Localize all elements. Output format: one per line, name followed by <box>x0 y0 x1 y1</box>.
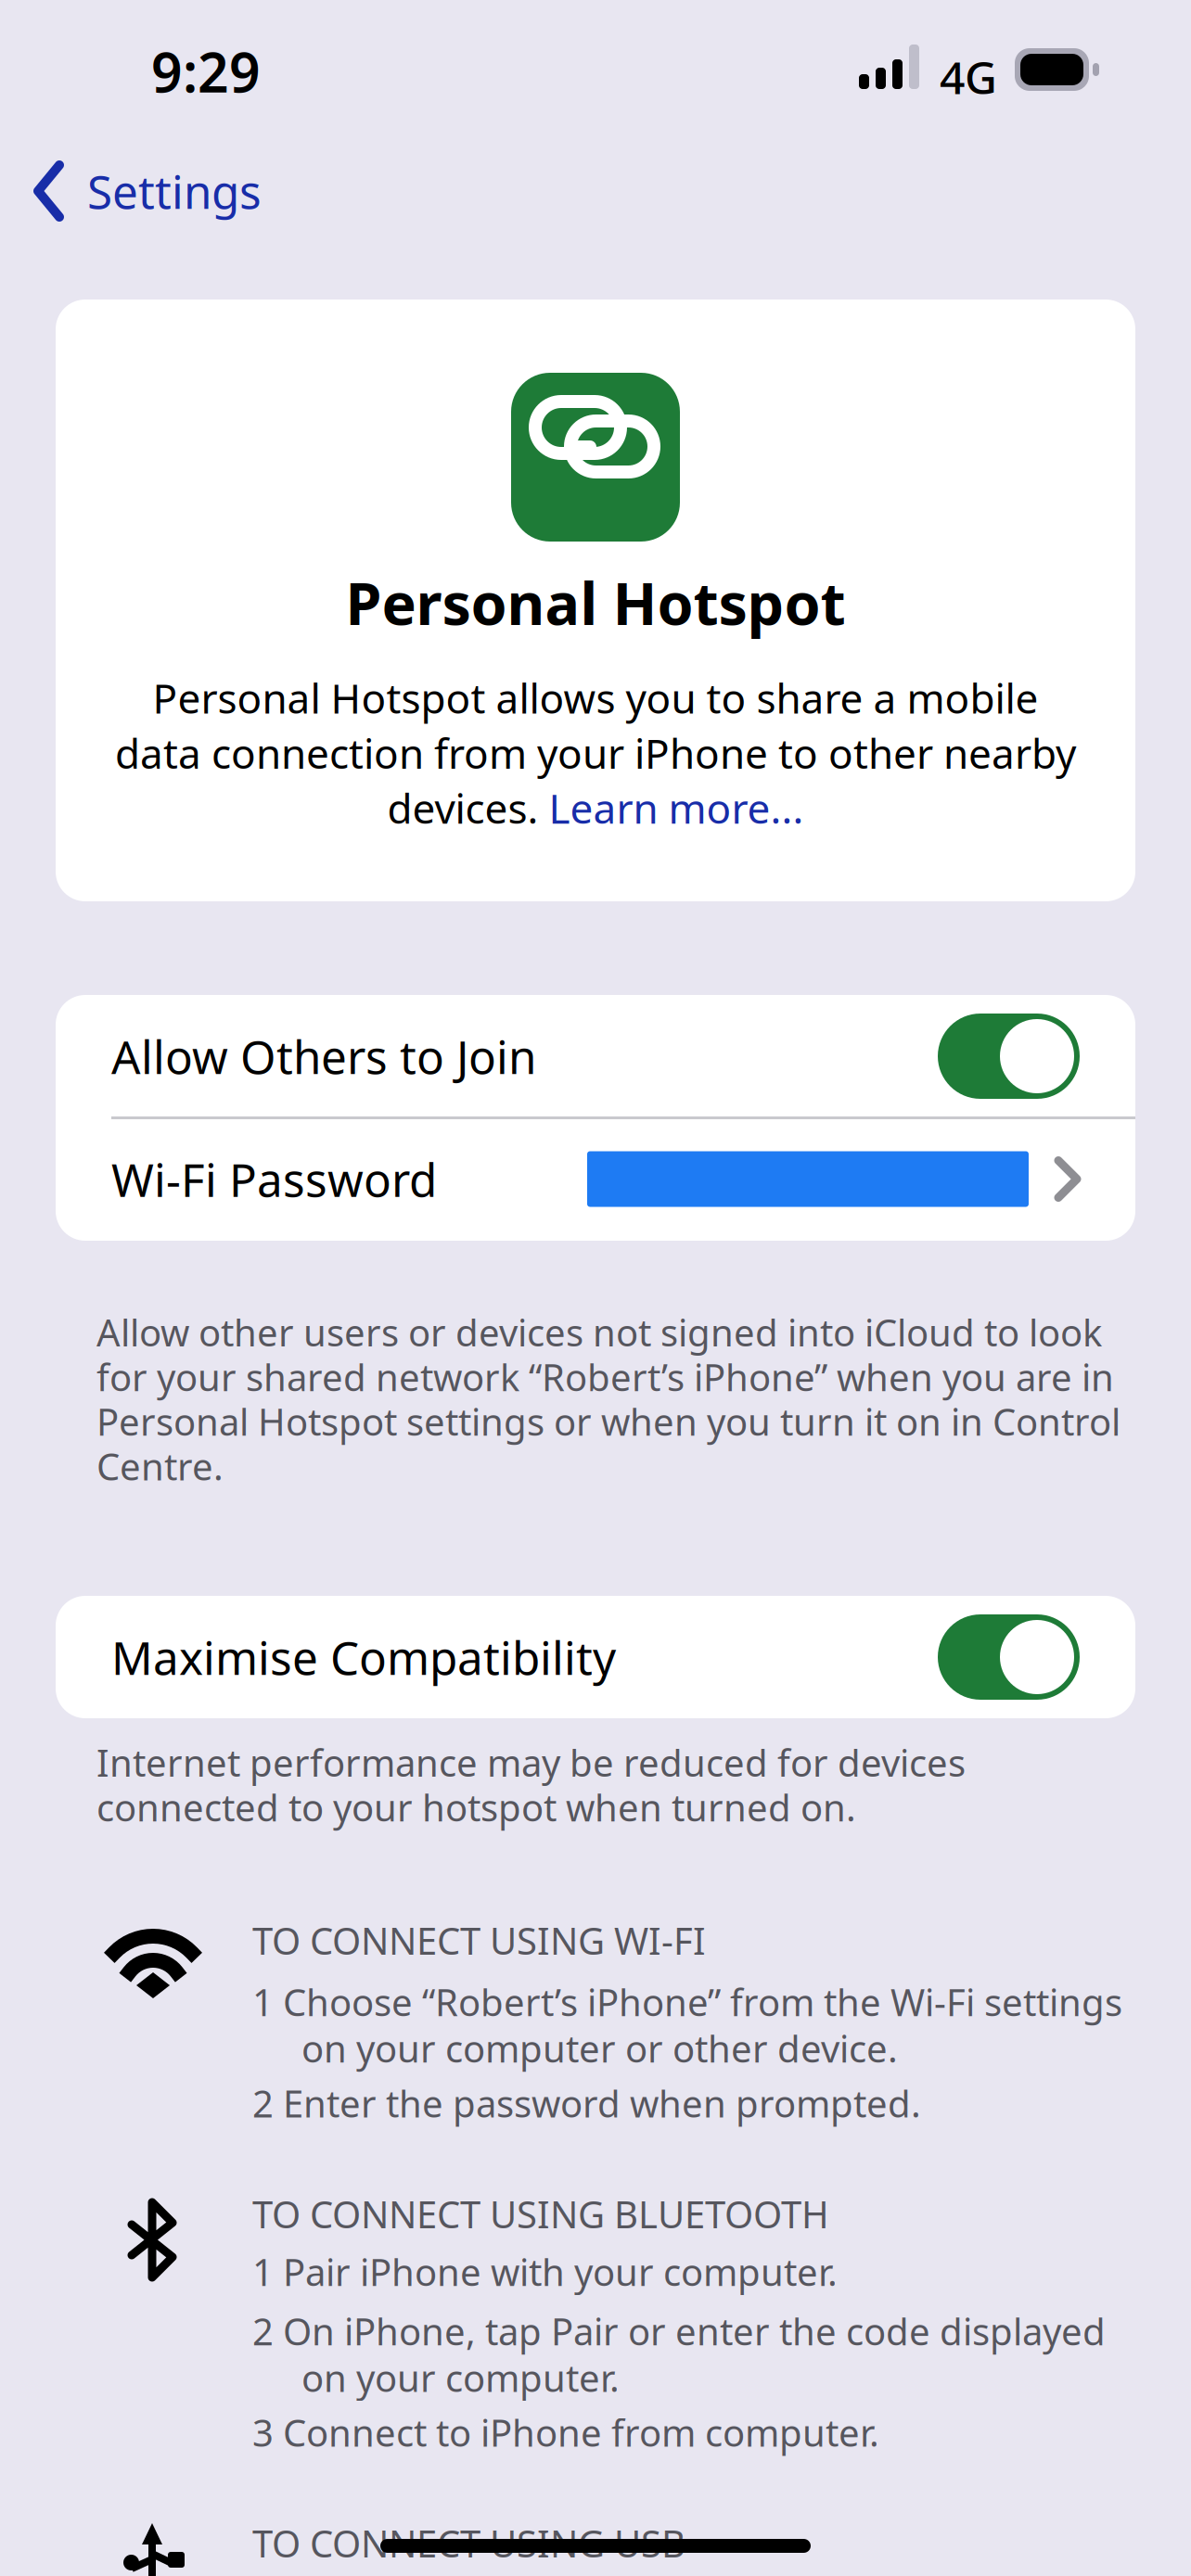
staticText: TO CONNECT USING WI-FI <box>252 1916 706 1965</box>
staticText: 1 <box>252 2247 274 2296</box>
staticText: data connection from your iPhone to othe… <box>115 726 1076 780</box>
staticText: Learn more... <box>549 781 804 835</box>
staticText: Allow Others to Join <box>111 1026 536 1087</box>
staticText: Allow other users or devices not signed … <box>96 1307 1121 1491</box>
staticText: Wi-Fi Password <box>111 1149 437 1209</box>
staticText: Choose “Robert’s iPhone” from the Wi-Fi … <box>283 1977 1122 2073</box>
staticText: Settings <box>87 161 262 221</box>
staticText: Personal Hotspot <box>346 564 845 641</box>
staticText: 3 <box>252 2408 274 2457</box>
button[interactable]: Learn more... <box>549 781 804 835</box>
staticText: Connect to iPhone from computer. <box>283 2408 879 2457</box>
staticText: TO CONNECT USING USB <box>252 2519 685 2568</box>
staticText: devices. <box>387 781 549 835</box>
button[interactable]: Wi-Fi Password <box>56 1117 1135 1241</box>
staticText: Maximise Compatibility <box>111 1627 616 1687</box>
button[interactable]: Settings <box>0 139 297 243</box>
staticText: Personal Hotspot allows you to share a m… <box>153 671 1038 725</box>
staticText: Internet performance may be reduced for … <box>96 1738 966 1832</box>
staticText: Enter the password when prompted. <box>283 2078 921 2128</box>
staticText: 4G <box>940 47 997 106</box>
staticText: 9:29 <box>151 35 261 107</box>
staticText: 2 <box>252 2078 274 2128</box>
button[interactable]: Maximise Compatibility <box>56 1596 1135 1718</box>
staticText: Pair iPhone with your computer. <box>283 2247 838 2296</box>
staticText: On iPhone, tap Pair or enter the code di… <box>283 2306 1106 2402</box>
staticText: TO CONNECT USING BLUETOOTH <box>252 2189 829 2239</box>
button[interactable]: Allow Others to Join <box>56 995 1135 1117</box>
staticText: 1 <box>252 1977 274 2026</box>
staticText: 2 <box>252 2306 274 2356</box>
